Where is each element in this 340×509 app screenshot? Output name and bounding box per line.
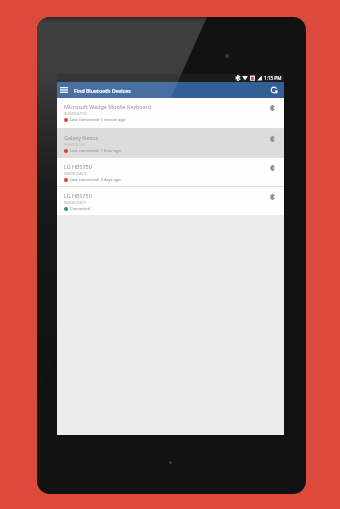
staticText: 00:1A:7D:DA:71:13 bbox=[64, 112, 87, 116]
staticText: Find Bluetooth Devices bbox=[74, 87, 131, 94]
staticText: 1:15 PM bbox=[264, 75, 282, 81]
button[interactable]: LG HBS750 bbox=[57, 158, 284, 186]
staticText: Microsoft Wedge Mobile Keyboard bbox=[64, 103, 152, 110]
button[interactable]: Bluetooth bbox=[266, 102, 278, 114]
button[interactable]: Refresh bbox=[267, 82, 281, 98]
staticText: Galaxy Nexus bbox=[64, 134, 99, 141]
button[interactable]: Open navigation drawer bbox=[58, 82, 69, 98]
staticText: B8:AD:3E:12:A4:71 bbox=[64, 201, 87, 205]
staticText: 04:46:65:8A:11:02 bbox=[64, 143, 86, 147]
staticText: Last connected: 1 minute ago bbox=[70, 117, 126, 122]
button[interactable]: Bluetooth bbox=[266, 133, 278, 145]
button[interactable]: Galaxy Nexus bbox=[57, 129, 284, 157]
staticText: B8:AD:3E:12:A4:70 bbox=[64, 172, 87, 176]
button[interactable]: LG HBS750 bbox=[57, 187, 284, 215]
staticText: Last connected: 1 hour ago bbox=[70, 148, 121, 153]
button[interactable]: Microsoft Wedge Mobile Keyboard bbox=[57, 98, 284, 128]
staticText: LG HBS750 bbox=[64, 192, 92, 199]
staticText: LG HBS750 bbox=[64, 163, 92, 170]
button[interactable]: Bluetooth bbox=[266, 162, 278, 174]
staticText: Connected bbox=[70, 206, 91, 211]
staticText: Last connected: 3 days ago bbox=[70, 177, 121, 182]
button[interactable]: Bluetooth bbox=[266, 191, 278, 203]
